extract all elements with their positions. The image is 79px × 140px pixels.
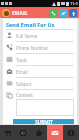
button[interactable]: App logo <box>2 9 10 17</box>
staticText: Topic <box>16 57 27 63</box>
staticText: Subject <box>16 81 32 87</box>
button[interactable]: Facebook <box>69 9 77 17</box>
staticText: Content <box>16 92 33 98</box>
staticText: SUBMIT <box>35 119 53 124</box>
staticText: Phone Number <box>16 45 49 51</box>
button[interactable]: History <box>15 125 31 140</box>
button[interactable]: Full Name <box>6 30 74 42</box>
button[interactable]: Email <box>6 66 74 78</box>
staticText: Email <box>16 69 28 75</box>
button[interactable]: Twitter <box>59 9 67 17</box>
button[interactable]: Call us <box>49 9 57 17</box>
staticText: Full Name <box>16 33 38 39</box>
staticText: EMAIL <box>12 10 28 17</box>
button[interactable]: Topic <box>6 54 74 66</box>
button[interactable]: Phone Number <box>6 42 74 54</box>
button[interactable]: Cart <box>0 125 15 140</box>
button[interactable]: Home <box>31 125 47 140</box>
button[interactable]: Info <box>63 125 79 140</box>
staticText: 11:1 <box>70 1 78 6</box>
staticText: Send Email For Us <box>6 21 55 28</box>
button[interactable]: Subject <box>6 78 74 90</box>
button[interactable]: Email <box>47 125 63 140</box>
button[interactable]: SUBMIT <box>13 119 74 124</box>
button[interactable] <box>16 99 74 116</box>
